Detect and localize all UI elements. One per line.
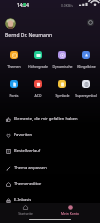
staticText: Dynamische (52, 64, 73, 69)
staticText: Symbole (55, 93, 70, 98)
staticText: Startseite (18, 211, 33, 215)
staticText: Mein Konto (61, 211, 79, 215)
button[interactable]: Symbole (50, 78, 74, 98)
staticText: Fonts (9, 93, 19, 98)
staticText: E-Inbasis (14, 197, 32, 203)
staticText: Themen (7, 64, 21, 69)
button[interactable]: Startseite (13, 205, 37, 215)
staticText: Bestellverlauf (14, 148, 41, 154)
staticText: 14:34 (17, 2, 29, 8)
staticText: Favoriten (14, 132, 33, 138)
staticText: ACO (34, 93, 42, 98)
button[interactable]: Höhergrade (26, 49, 50, 69)
button[interactable]: ACO (26, 78, 50, 98)
button[interactable]: Fonts (2, 78, 26, 98)
button[interactable]: Thema anpassen (0, 160, 100, 176)
staticText: Supersymbol (75, 93, 97, 98)
button[interactable]: Supersymbol (74, 78, 98, 98)
button[interactable]: Themeneditor (0, 176, 100, 192)
button[interactable]: Elemente, die mir gefallen haben (0, 111, 100, 127)
button[interactable]: Settings (87, 19, 94, 26)
button[interactable]: Profile picture (5, 18, 16, 29)
staticText: 0.0KB/s (61, 3, 73, 8)
button[interactable]: Dynamische (50, 49, 74, 69)
button[interactable]: Mein Konto (58, 205, 82, 215)
staticText: Themeneditor (14, 181, 42, 187)
button[interactable]: E-Inbasis (0, 192, 100, 208)
button[interactable]: Bestellverlauf (0, 143, 100, 159)
button[interactable]: Favoriten (0, 127, 100, 143)
staticText: Elemente, die mir gefallen haben (14, 116, 78, 122)
button[interactable]: Klingeltöne (74, 49, 98, 69)
staticText: Bernd Dr. Neumann (5, 32, 53, 39)
staticText: Höhergrade (28, 64, 48, 69)
staticText: Klingeltöne (77, 64, 96, 69)
button[interactable]: Themen (2, 49, 26, 69)
staticText: Thema anpassen (14, 165, 47, 171)
